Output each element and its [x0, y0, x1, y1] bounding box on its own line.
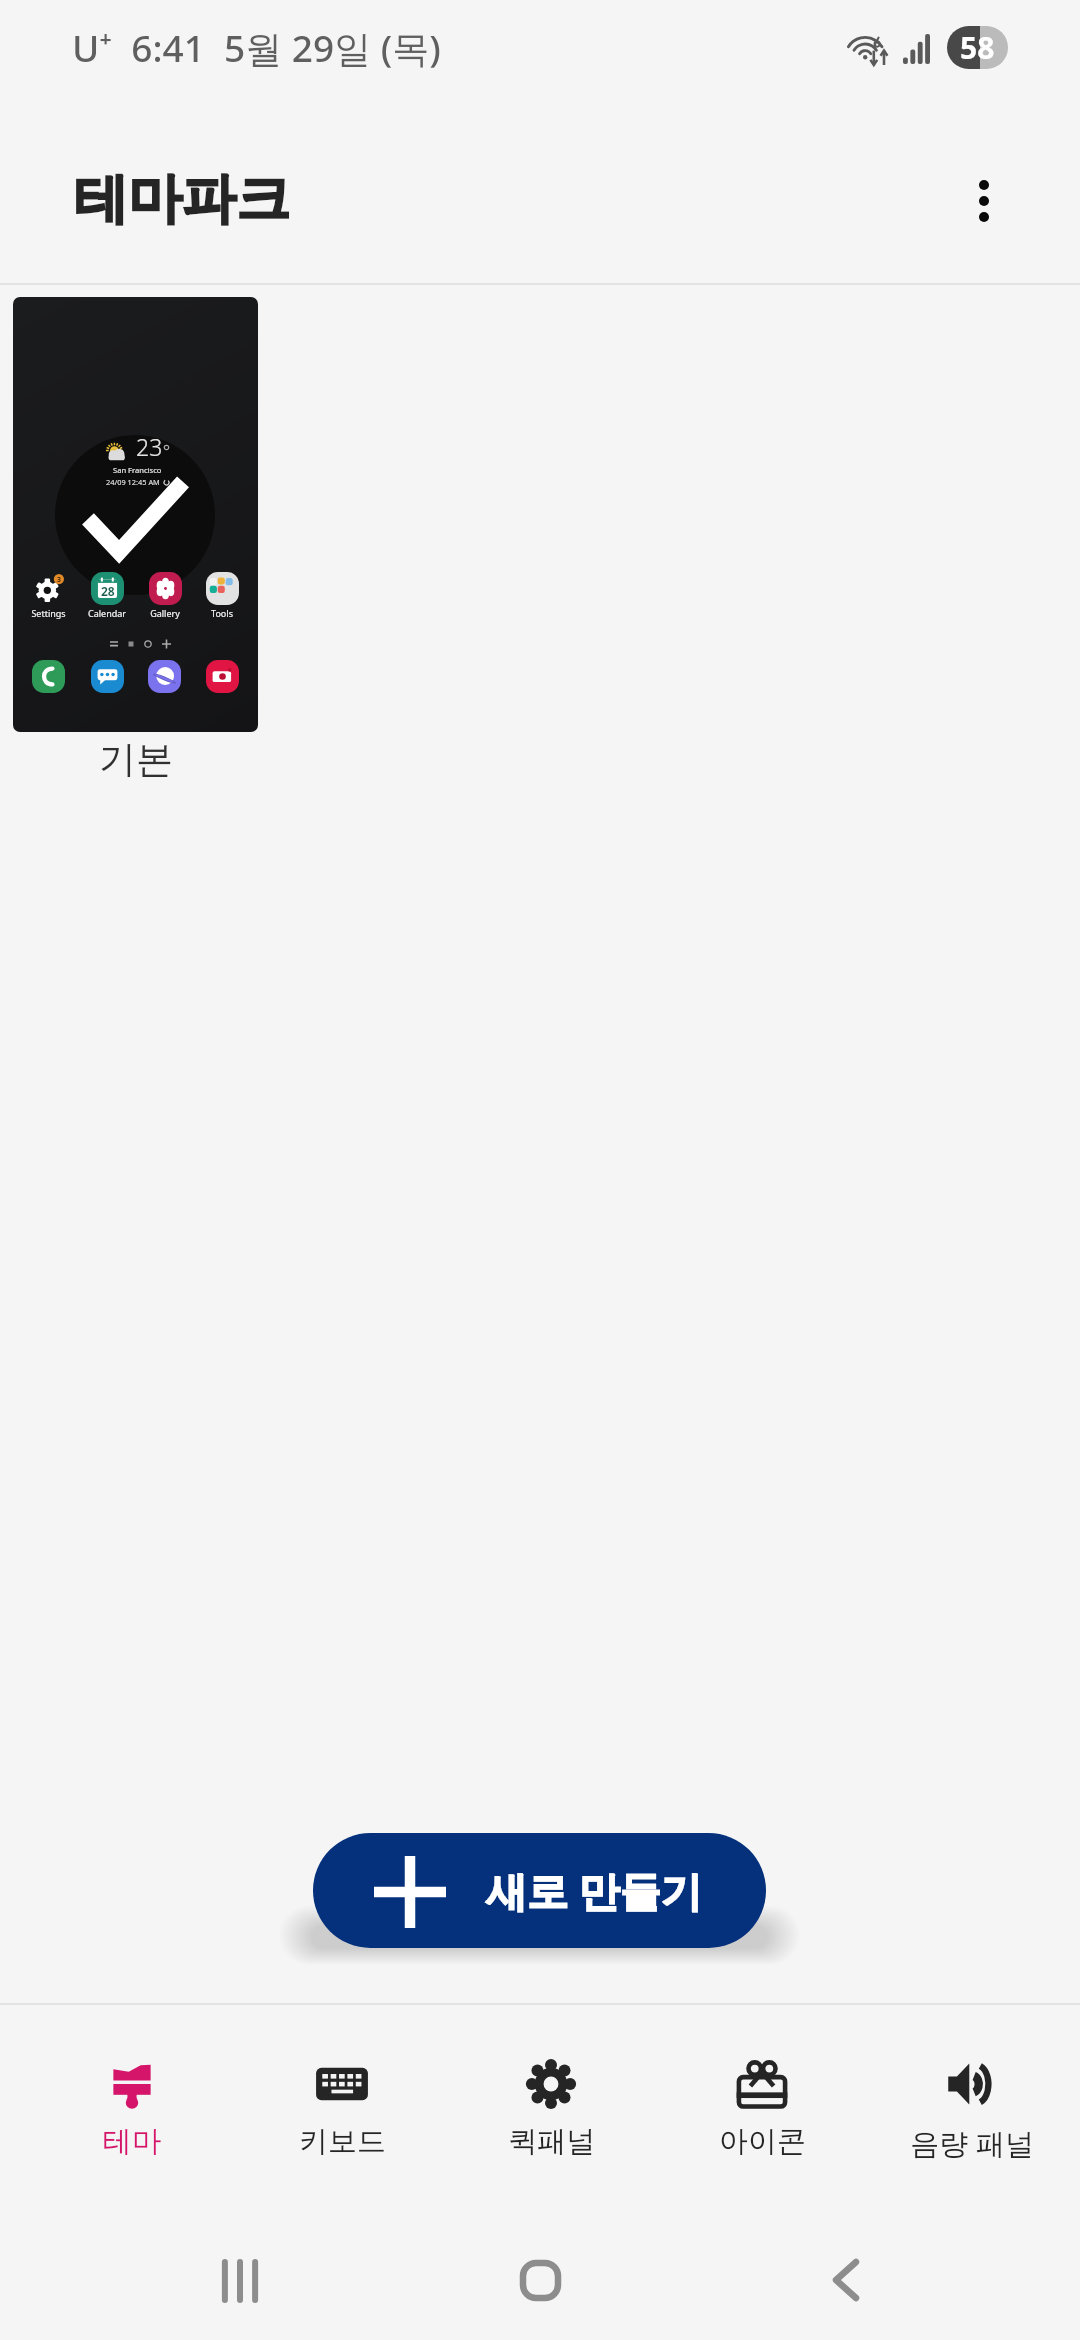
staticText: Gallery [150, 607, 180, 619]
button[interactable]: More options [924, 141, 1044, 261]
button[interactable]: 키보드 [237, 2005, 447, 2201]
button[interactable]: 기본 테마 [13, 297, 258, 732]
staticText: 28 [101, 583, 115, 599]
button[interactable]: Recent apps [180, 2220, 300, 2340]
staticText: 음량 패널 [910, 2123, 1034, 2163]
button[interactable]: 음량 패널 [867, 2005, 1077, 2201]
staticText: 퀵패널 [508, 2123, 595, 2160]
staticText: Settings [31, 607, 66, 619]
staticText: 아이콘 [719, 2123, 806, 2160]
button[interactable]: 퀵패널 [446, 2005, 656, 2201]
staticText: 키보드 [299, 2123, 386, 2160]
staticText: 테마 [103, 2123, 161, 2160]
staticText: 58 [960, 27, 995, 68]
staticText: 3 [57, 575, 62, 585]
staticText: 새로 만들기 [486, 1862, 702, 1918]
staticText: San Francisco [113, 465, 162, 475]
staticText: Tools [211, 607, 233, 619]
button[interactable]: 테마 [27, 2005, 237, 2201]
staticText: Calendar [88, 607, 126, 619]
staticText: 24/09 12:45 AM [106, 477, 160, 487]
button[interactable]: 아이콘 [657, 2005, 867, 2201]
button[interactable]: Back [786, 2220, 906, 2340]
staticText: 23 [136, 431, 163, 462]
staticText: U⁺ 6:41 5월 29일 (목) [72, 22, 441, 73]
staticText: 테마파크 [74, 165, 290, 233]
staticText: 기본 [99, 736, 173, 783]
button[interactable]: Home [480, 2220, 600, 2340]
button[interactable]: 새로 만들기 [313, 1833, 766, 1948]
